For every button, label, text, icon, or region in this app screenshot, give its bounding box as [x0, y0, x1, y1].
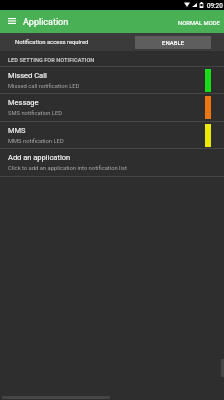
staticText: Message: [8, 98, 39, 107]
button[interactable]: NORMAL MODE: [174, 16, 224, 31]
button[interactable]: MMS: [0, 122, 224, 148]
button[interactable]: Missed Call: [0, 67, 224, 93]
button[interactable]: Add an application: [0, 149, 224, 175]
staticText: Add an application: [8, 153, 71, 162]
staticText: LED SETTING FOR NOTIFICATION: [8, 57, 95, 64]
staticText: Click to add an application into notific…: [8, 165, 127, 172]
staticText: Application: [23, 17, 69, 28]
staticText: MMS: [8, 126, 26, 135]
staticText: Notification access required: [15, 39, 89, 46]
staticText: Missed Call: [8, 71, 47, 80]
staticText: MMS notification LED: [8, 138, 64, 145]
staticText: SMS notification LED: [8, 110, 63, 117]
staticText: ENABLE: [162, 39, 185, 46]
button[interactable]: Message: [0, 94, 224, 120]
staticText: Missed call notification LED: [8, 83, 80, 90]
staticText: NORMAL MODE: [178, 20, 220, 27]
staticText: 09:20: [207, 2, 223, 9]
button[interactable]: ENABLE: [135, 36, 211, 49]
button[interactable]: Open navigation drawer: [0, 10, 23, 33]
